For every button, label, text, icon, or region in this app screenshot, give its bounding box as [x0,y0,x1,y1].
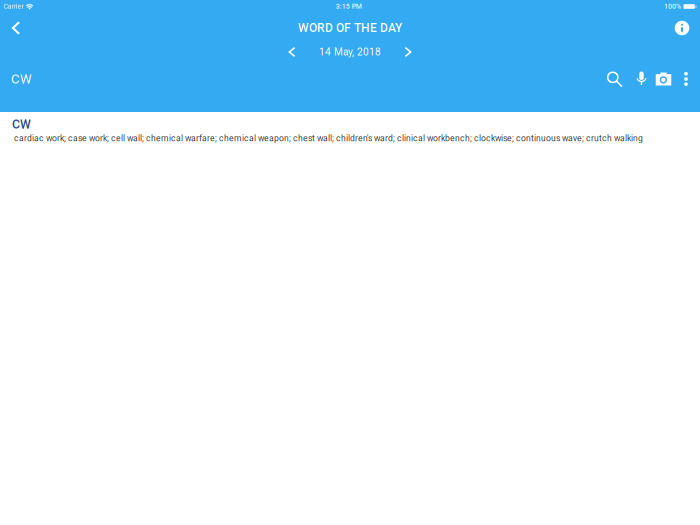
button[interactable]: CW [0,66,57,92]
staticText: WORD OF THE DAY [298,21,402,35]
button[interactable]: Previous day [279,42,305,62]
staticText: 3:15 PM [336,2,362,10]
button[interactable]: Next day [395,42,421,62]
staticText: CW [12,117,31,131]
button[interactable]: Information [667,15,697,41]
staticText: 100% [664,2,681,10]
button[interactable]: More options [674,66,698,92]
button[interactable]: Search [602,66,626,92]
button[interactable]: Voice search [629,66,653,92]
staticText: 14 May, 2018 [319,46,381,58]
staticText: cardiac work; case work; cell wall; chem… [14,133,643,143]
staticText: CW [11,71,32,87]
staticText: Carrier [3,2,23,10]
button[interactable]: Camera [651,66,675,92]
button[interactable]: Back [1,15,31,41]
